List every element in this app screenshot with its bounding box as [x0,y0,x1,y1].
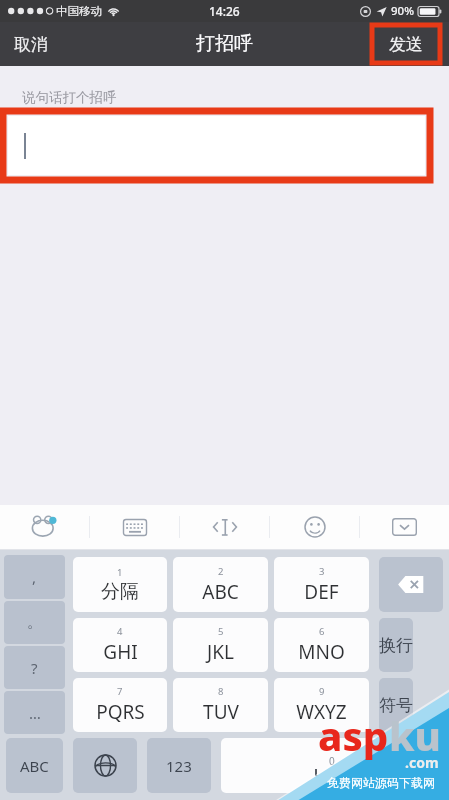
staticText: 免费网站源码下载网 [327,775,435,790]
staticText: 14:26 [209,3,240,19]
button[interactable]: 123 [147,738,211,793]
staticText: ABC [202,579,239,605]
staticText: ABC [20,756,49,776]
button[interactable]: Move cursor [180,505,269,549]
button[interactable]: 发送 [372,25,440,63]
staticText: asp [318,708,389,762]
button[interactable]: 3 [274,557,369,612]
button[interactable]: Emoji [270,505,359,549]
button[interactable]: Switch language [73,738,137,793]
button[interactable]: 6 [274,618,369,672]
button[interactable]: 4 [73,618,167,672]
staticText: … [29,703,41,723]
staticText: 4 [117,625,123,638]
staticText: 6 [319,625,325,638]
staticText: MNO [298,639,345,665]
staticText: 90% [391,3,414,19]
button[interactable]: 8 [173,678,268,732]
button[interactable]: 5 [173,618,268,672]
staticText: 3 [319,565,325,578]
staticText: ? [31,658,38,678]
staticText: 中国移动 [56,4,102,18]
staticText: .com [405,753,439,772]
staticText: 5 [218,625,224,638]
staticText: WXYZ [296,699,347,725]
staticText: JKL [207,639,234,665]
staticText: 123 [166,756,192,776]
staticText: 打招呼 [196,32,253,56]
button[interactable]: 2 [173,557,268,612]
staticText: , [32,567,37,587]
staticText: ku [389,708,441,762]
button[interactable]: Baidu input [0,505,89,549]
staticText: TUV [203,699,239,725]
staticText: 9 [319,685,325,698]
button[interactable]: 0 [221,738,443,793]
staticText: 取消 [14,34,48,55]
button[interactable]: 符号 [379,678,413,732]
staticText: GHI [103,639,138,665]
staticText: 8 [218,685,224,698]
staticText: PQRS [96,699,145,725]
staticText: 0 [329,754,335,768]
staticText: 。 [27,613,42,632]
staticText: 分隔 [101,580,139,604]
button[interactable]: 7 [73,678,167,732]
button[interactable]: 换行 [379,618,413,672]
staticText: 1 [117,566,123,579]
staticText: DEF [304,579,339,605]
staticText: 7 [117,685,123,698]
button[interactable]: Backspace [379,557,443,612]
staticText: 说句话打个招呼 [22,89,117,106]
button[interactable]: ? [4,646,65,689]
button[interactable]: 9 [274,678,369,732]
button[interactable]: Keyboard layout [90,505,179,549]
button[interactable]: 。 [4,601,65,644]
button[interactable]: 1 [73,557,167,612]
button[interactable]: … [4,691,65,734]
button[interactable]: 取消 [0,26,62,63]
staticText: 符号 [379,695,413,716]
button[interactable]: , [4,555,65,599]
button[interactable] [8,116,425,175]
button[interactable]: ABC [6,738,63,793]
staticText: 换行 [379,635,413,656]
staticText: 发送 [389,34,423,55]
button[interactable]: Hide keyboard [360,505,449,549]
staticText: 2 [218,565,224,578]
